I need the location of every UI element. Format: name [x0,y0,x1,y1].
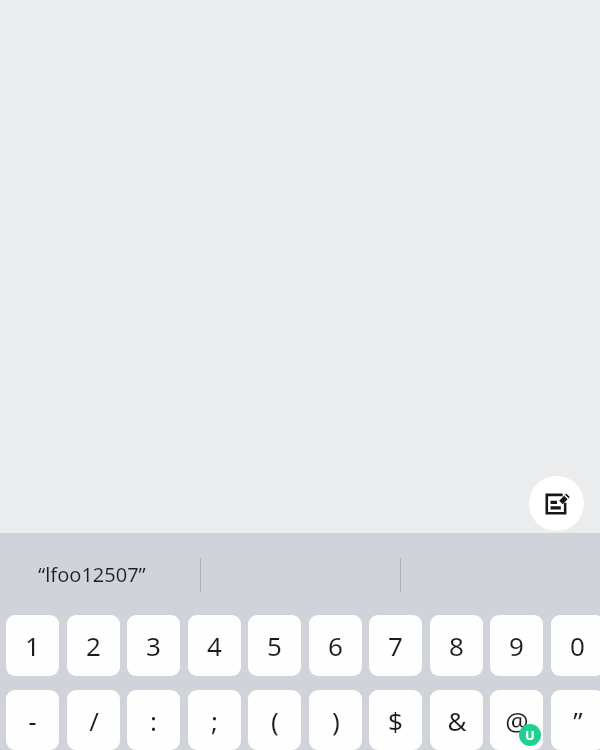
staticText: $ [388,703,403,738]
button[interactable]: New note [529,476,584,531]
button[interactable]: 7 [369,615,422,676]
button[interactable]: ; [188,690,241,750]
button[interactable]: @ [490,690,543,750]
staticText: ( [271,703,279,738]
button[interactable]: ) [309,690,362,750]
staticText: 9 [509,628,524,663]
staticText: U [525,726,535,744]
staticText: 4 [207,628,222,663]
button[interactable]: & [430,690,483,750]
button[interactable]: 8 [430,615,483,676]
staticText: & [447,703,467,738]
staticText: / [89,703,99,738]
button[interactable]: 0 [551,615,600,676]
button[interactable]: ( [248,690,301,750]
button[interactable]: “lfoo12507” [0,533,200,615]
staticText: : [150,703,157,738]
staticText: @ [505,703,529,738]
button[interactable]: : [127,690,180,750]
staticText: ; [211,703,218,738]
button[interactable]: 4 [188,615,241,676]
staticText: 6 [328,628,343,663]
staticText: 7 [388,628,403,663]
staticText: 0 [570,628,585,663]
staticText: ) [332,703,340,738]
button[interactable]: - [6,690,59,750]
button[interactable]: 2 [67,615,120,676]
staticText: 2 [86,628,101,663]
button[interactable]: / [67,690,120,750]
button[interactable]: ” [551,690,600,750]
staticText: 1 [25,628,40,663]
staticText: 3 [146,628,161,663]
button[interactable]: 3 [127,615,180,676]
staticText: - [28,703,37,738]
staticText: “lfoo12507” [38,561,146,588]
button[interactable]: $ [369,690,422,750]
button[interactable]: 9 [490,615,543,676]
button[interactable]: 6 [309,615,362,676]
button[interactable]: 5 [248,615,301,676]
staticText: 5 [267,628,282,663]
staticText: ” [573,703,583,738]
staticText: 8 [449,628,464,663]
button[interactable]: 1 [6,615,59,676]
